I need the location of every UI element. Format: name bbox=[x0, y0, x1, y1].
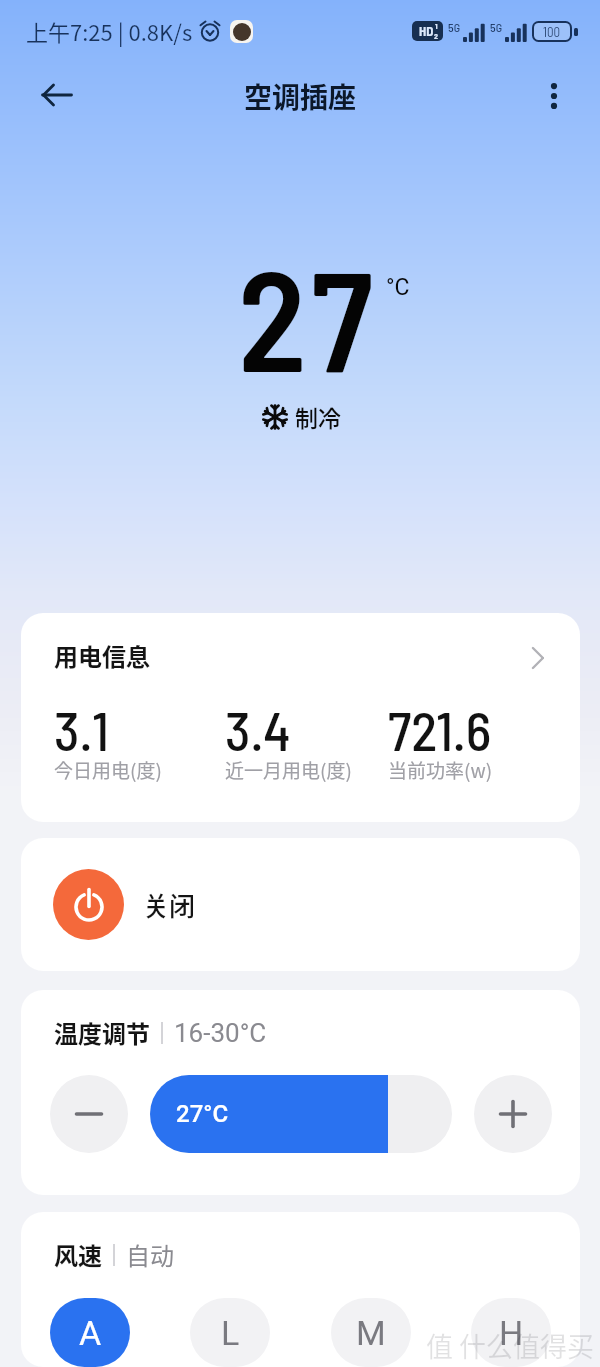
staticText: 721.6 bbox=[388, 697, 492, 762]
staticText: °C bbox=[386, 274, 410, 301]
button[interactable]: H bbox=[471, 1298, 551, 1367]
staticText: H bbox=[499, 1313, 524, 1353]
staticText: 16-30°C bbox=[174, 1018, 267, 1048]
staticText: 空调插座 bbox=[244, 76, 357, 117]
staticText: 自动 bbox=[126, 1237, 174, 1272]
staticText: 关闭 bbox=[143, 886, 196, 924]
staticText: 近一月用电(度) bbox=[225, 756, 352, 784]
button[interactable]: Increase temperature bbox=[474, 1075, 552, 1153]
staticText: 3.4 bbox=[225, 697, 291, 762]
staticText: 27°C bbox=[176, 1100, 229, 1128]
button[interactable]: 用电信息 bbox=[21, 613, 580, 822]
staticText: 上午7:25 | 0.8K/s bbox=[26, 15, 193, 47]
button[interactable]: Electricity details bbox=[516, 638, 556, 678]
button[interactable]: More options bbox=[532, 74, 576, 118]
staticText: 今日用电(度) bbox=[54, 756, 162, 784]
staticText: 值 什么值得买 bbox=[426, 1326, 595, 1365]
staticText: 用电信息 bbox=[54, 638, 150, 673]
button[interactable]: M bbox=[331, 1298, 411, 1367]
staticText: 风速 bbox=[54, 1237, 102, 1272]
button[interactable]: A bbox=[50, 1298, 130, 1367]
staticText: L bbox=[221, 1313, 240, 1353]
staticText: M bbox=[356, 1313, 386, 1353]
button[interactable]: L bbox=[190, 1298, 270, 1367]
button[interactable]: 关闭 bbox=[21, 838, 224, 971]
staticText: HD bbox=[419, 23, 434, 39]
staticText: 27 bbox=[238, 232, 378, 400]
staticText: 制冷 bbox=[295, 400, 341, 433]
staticText: 当前功率(w) bbox=[388, 756, 493, 784]
staticText: 1 bbox=[435, 21, 438, 31]
staticText: 温度调节 bbox=[54, 1015, 150, 1050]
staticText: 5G bbox=[490, 20, 503, 34]
button[interactable]: Decrease temperature bbox=[50, 1075, 128, 1153]
button[interactable]: Back bbox=[35, 73, 79, 117]
staticText: 3.1 bbox=[54, 697, 109, 762]
staticText: 5G bbox=[448, 20, 461, 34]
staticText: 2 bbox=[434, 31, 438, 41]
button[interactable]: 27°C bbox=[150, 1075, 452, 1153]
staticText: 100 bbox=[543, 24, 561, 40]
staticText: A bbox=[79, 1313, 102, 1353]
